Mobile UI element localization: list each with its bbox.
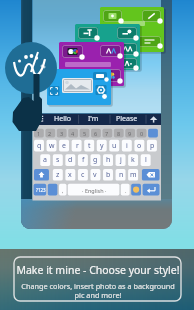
button[interactable]: l [141, 154, 151, 166]
button[interactable]: t [84, 140, 94, 152]
staticText: i [126, 141, 128, 151]
button[interactable]: y [97, 140, 107, 152]
button[interactable]: q [34, 140, 44, 152]
staticText: a [43, 155, 47, 165]
staticText: I'm [88, 114, 99, 124]
button[interactable]: j [116, 154, 126, 166]
staticText: q [37, 141, 42, 151]
staticText: e [62, 141, 66, 151]
button[interactable]: c [78, 169, 88, 181]
button[interactable]: 1 [34, 129, 44, 138]
staticText: t [88, 141, 91, 151]
button[interactable]: . [121, 184, 130, 196]
staticText: o [137, 141, 142, 151]
button[interactable]: o [134, 140, 144, 152]
staticText: l [145, 155, 147, 165]
button[interactable]: p [147, 140, 157, 152]
staticText: 1 [37, 130, 41, 137]
button[interactable]: b [103, 169, 113, 181]
staticText: · English · [82, 187, 107, 194]
button[interactable]: 3 [57, 129, 67, 138]
button[interactable]: m [128, 169, 138, 181]
button[interactable]: 7 [102, 129, 112, 138]
button[interactable]: Hello [46, 113, 78, 125]
button[interactable]: , [59, 184, 67, 196]
staticText: d [68, 155, 73, 165]
staticText: 9 [128, 130, 132, 137]
staticText: z [56, 170, 60, 180]
staticText: f [82, 155, 85, 165]
button[interactable]: 4 [68, 129, 78, 138]
staticText: c [81, 170, 85, 180]
staticText: g [93, 155, 98, 165]
button[interactable]: 8 [114, 129, 124, 138]
staticText: p [150, 141, 155, 151]
staticText: w [49, 141, 55, 151]
staticText: 0 [140, 130, 144, 137]
staticText: . [125, 187, 127, 194]
staticText: Please [116, 114, 138, 124]
button[interactable]: w [47, 140, 57, 152]
staticText: Hello [54, 114, 71, 124]
staticText: b [106, 170, 111, 180]
staticText: 8 [117, 130, 121, 137]
button[interactable]: d [65, 154, 75, 166]
button[interactable]: e [59, 140, 69, 152]
button[interactable]: x [65, 169, 75, 181]
staticText: k [131, 155, 135, 165]
staticText: s [56, 155, 60, 165]
button[interactable]: · English · [68, 184, 120, 196]
button[interactable]: v [90, 169, 100, 181]
staticText: x [68, 170, 72, 180]
staticText: Change colors, insert photo as a backgro… [19, 281, 177, 301]
staticText: r [76, 141, 79, 151]
button[interactable]: Please [109, 113, 145, 125]
button[interactable]: z [53, 169, 63, 181]
staticText: 4 [71, 130, 75, 137]
staticText: y [100, 141, 104, 151]
button[interactable]: s [53, 154, 63, 166]
button[interactable]: Make it mine - Choose your style! [0, 249, 194, 310]
button[interactable]: 5 [80, 129, 90, 138]
button[interactable]: f [78, 154, 88, 166]
staticText: j [120, 155, 122, 165]
button[interactable]: a [40, 154, 50, 166]
button[interactable]: 6 [91, 129, 101, 138]
staticText: v [93, 170, 97, 180]
button[interactable]: Expand suggestions [145, 113, 161, 125]
staticText: 3 [60, 130, 64, 137]
staticText: n [119, 170, 124, 180]
staticText: 5 [83, 130, 87, 137]
button[interactable]: Keyboard menu [32, 113, 46, 125]
staticText: 7 [105, 130, 109, 137]
button[interactable]: k [128, 154, 138, 166]
staticText: Make it mine - Choose your style! [16, 263, 180, 277]
button[interactable]: r [72, 140, 82, 152]
button[interactable]: 0 [137, 129, 147, 138]
button[interactable]: 9 [125, 129, 135, 138]
button[interactable]: ?123 [34, 184, 47, 196]
button[interactable]: h [103, 154, 113, 166]
staticText: h [106, 155, 111, 165]
staticText: u [112, 141, 117, 151]
button[interactable]: i [122, 140, 132, 152]
button[interactable]: u [109, 140, 119, 152]
staticText: , [62, 187, 64, 194]
button[interactable]: n [116, 169, 126, 181]
button[interactable]: I'm [78, 113, 109, 125]
staticText: m [130, 170, 137, 180]
staticText: 6 [94, 130, 98, 137]
staticText: 2 [48, 130, 52, 137]
button[interactable]: 2 [45, 129, 55, 138]
button[interactable]: g [90, 154, 100, 166]
staticText: ?123 [36, 187, 46, 193]
